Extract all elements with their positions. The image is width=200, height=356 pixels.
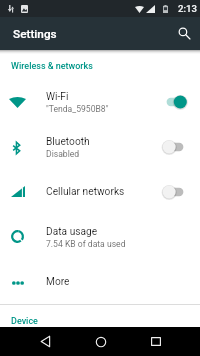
- button[interactable]: Data usage: [0, 214, 200, 259]
- button[interactable]: Bluetooth: [0, 124, 200, 169]
- button[interactable]: Recent apps: [141, 327, 170, 356]
- staticText: 2:13: [178, 3, 197, 14]
- button[interactable]: Switch off: [163, 136, 187, 158]
- button[interactable]: Home: [86, 327, 115, 356]
- staticText: Wireless & networks: [11, 61, 93, 72]
- button[interactable]: More: [0, 259, 200, 304]
- button[interactable]: Back: [31, 327, 60, 356]
- button[interactable]: Switch on: [163, 91, 187, 113]
- button[interactable]: Wi-Fi: [0, 79, 200, 124]
- staticText: Data usage: [46, 226, 98, 238]
- staticText: Device: [11, 316, 38, 327]
- staticText: Settings: [13, 27, 57, 41]
- staticText: Cellular networks: [46, 186, 125, 198]
- button[interactable]: Switch off: [163, 181, 187, 203]
- button[interactable]: Cellular networks: [0, 169, 200, 214]
- staticText: 7.54 KB of data used: [46, 239, 126, 249]
- staticText: Disabled: [46, 149, 80, 159]
- staticText: "Tenda_5950B8": [46, 104, 109, 114]
- button[interactable]: Search: [167, 17, 200, 50]
- staticText: More: [46, 276, 70, 288]
- staticText: Wi-Fi: [46, 91, 69, 103]
- staticText: Bluetooth: [46, 136, 90, 148]
